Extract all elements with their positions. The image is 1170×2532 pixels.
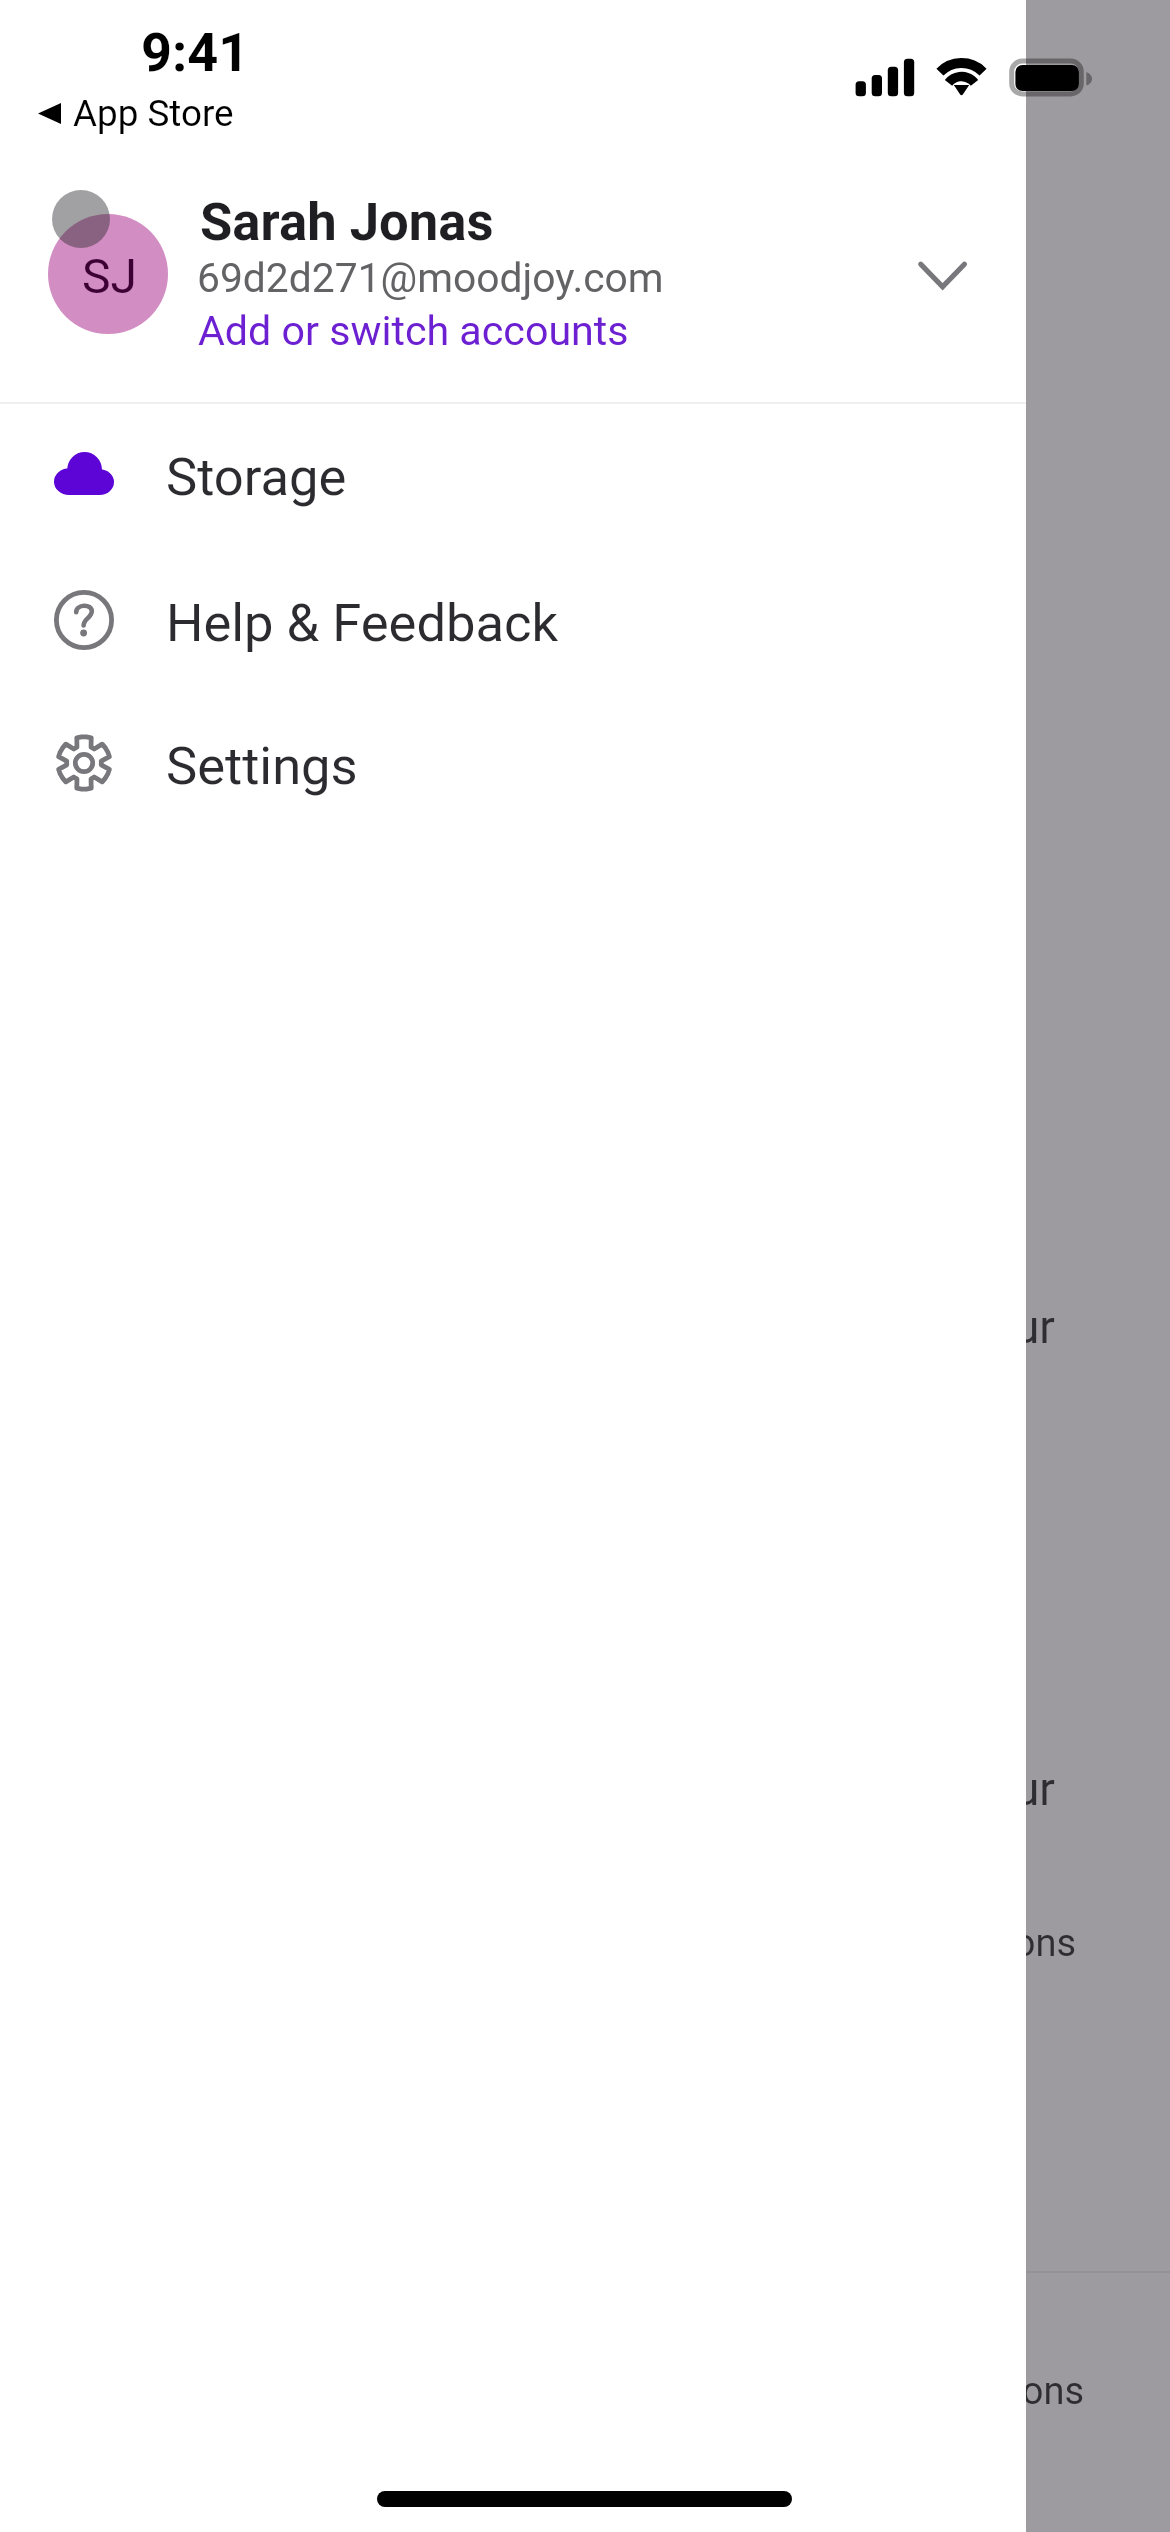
staticText: 69d2d271@moodjoy.com [197,254,664,302]
button[interactable]: Back to App Store [38,92,234,135]
button[interactable]: SJ [0,0,1026,402]
staticText: Notifications [860,1921,1077,1966]
staticText: Help & Feedback [166,592,559,654]
staticText: 9:41 [141,21,250,84]
staticText: Manage your [789,1762,1055,1816]
button[interactable]: Help & Feedback [0,548,1026,692]
staticText: Storage [166,446,347,508]
other: Back to App Store [38,103,61,124]
staticText: Add or switch accounts [198,307,629,355]
staticText: App Store [73,92,234,135]
staticText: Sarah Jonas [200,191,494,253]
button[interactable]: Storage [0,402,1026,546]
button[interactable]: Expand account list [898,230,988,320]
staticText: Settings [166,735,358,797]
staticText: Manage your [789,1300,1055,1354]
staticText: SJ [82,248,137,304]
button[interactable]: Settings [0,691,1026,835]
staticText: Notifications [868,2369,1085,2414]
